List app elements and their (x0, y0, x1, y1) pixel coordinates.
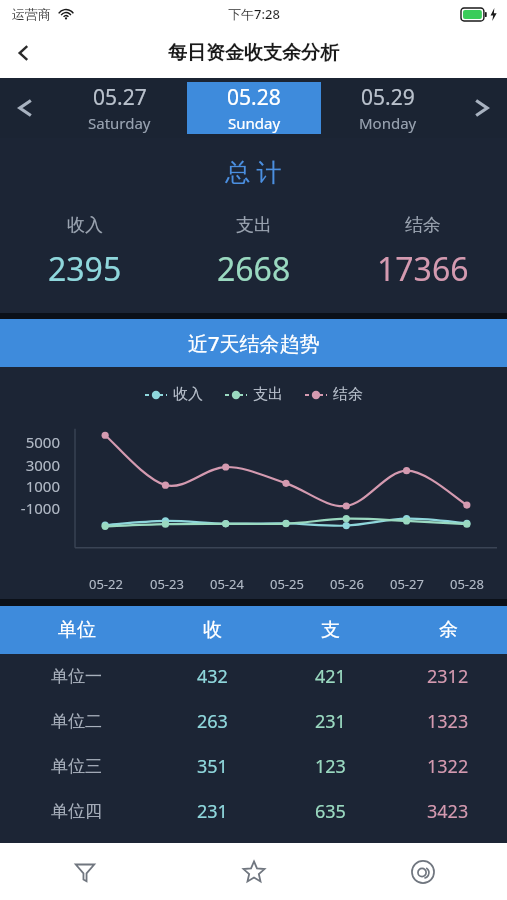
button[interactable]: Filter (0, 843, 169, 900)
staticText: 支出 (253, 385, 283, 404)
staticText: 351 (197, 754, 228, 779)
button[interactable]: 单位三 (0, 744, 507, 789)
button[interactable]: Back (0, 29, 48, 77)
staticText: 1323 (427, 709, 469, 734)
staticText: -1000 (20, 498, 60, 518)
staticText: 2668 (217, 247, 291, 291)
button[interactable]: Previous day (0, 78, 52, 138)
staticText: 432 (197, 664, 228, 689)
staticText: 总 计 (225, 154, 282, 188)
staticText: 3423 (427, 799, 469, 824)
staticText: 余 (439, 618, 458, 642)
button[interactable]: 近7天结余趋势 (0, 319, 507, 367)
staticText: 05-25 (270, 575, 304, 593)
staticText: 单位四 (51, 801, 102, 822)
button[interactable]: 05.29 (321, 82, 455, 134)
staticText: 05.29 (361, 83, 415, 112)
staticText: 263 (197, 709, 228, 734)
staticText: 下午7:28 (228, 5, 280, 23)
staticText: 2395 (48, 247, 122, 291)
staticText: 05.28 (227, 83, 281, 112)
staticText: 05-23 (150, 575, 184, 593)
staticText: 结余 (405, 214, 441, 237)
staticText: 05-26 (330, 575, 364, 593)
staticText: 单位二 (51, 711, 102, 732)
button[interactable]: Favorite (169, 843, 338, 900)
staticText: 收入 (173, 385, 203, 404)
staticText: 支出 (236, 214, 272, 237)
staticText: 运营商 (12, 6, 51, 22)
staticText: 近7天结余趋势 (188, 330, 320, 357)
staticText: 3000 (25, 455, 60, 475)
staticText: 231 (315, 709, 346, 734)
staticText: 单位三 (51, 756, 102, 777)
staticText: 123 (315, 754, 346, 779)
button[interactable]: 单位二 (0, 699, 507, 744)
staticText: 收入 (67, 214, 103, 237)
staticText: 结余 (333, 385, 363, 404)
staticText: 05-27 (390, 575, 424, 593)
button[interactable]: Next day (455, 78, 507, 138)
staticText: Sunday (228, 113, 281, 133)
staticText: 635 (315, 799, 346, 824)
staticText: Saturday (88, 113, 151, 133)
button[interactable]: 05.28 (187, 82, 321, 134)
staticText: 05-24 (210, 575, 244, 593)
button[interactable]: 单位一 (0, 654, 507, 699)
staticText: 05.27 (93, 83, 147, 112)
staticText: Monday (359, 113, 417, 133)
button[interactable]: Mentions (338, 843, 507, 900)
staticText: 1322 (427, 754, 469, 779)
staticText: 1000 (25, 476, 60, 496)
button[interactable]: 05.27 (52, 82, 187, 134)
staticText: 收 (203, 618, 222, 642)
staticText: 231 (197, 799, 228, 824)
staticText: 2312 (427, 664, 469, 689)
staticText: 421 (315, 664, 346, 689)
staticText: 单位一 (51, 666, 102, 687)
staticText: 支 (321, 618, 340, 642)
staticText: 5000 (25, 432, 60, 452)
staticText: 05-28 (450, 575, 484, 593)
staticText: 单位 (58, 618, 96, 642)
staticText: 每日资金收支余分析 (168, 41, 339, 65)
button[interactable]: 单位四 (0, 789, 507, 834)
staticText: 17366 (377, 247, 469, 291)
staticText: 05-22 (89, 575, 123, 593)
